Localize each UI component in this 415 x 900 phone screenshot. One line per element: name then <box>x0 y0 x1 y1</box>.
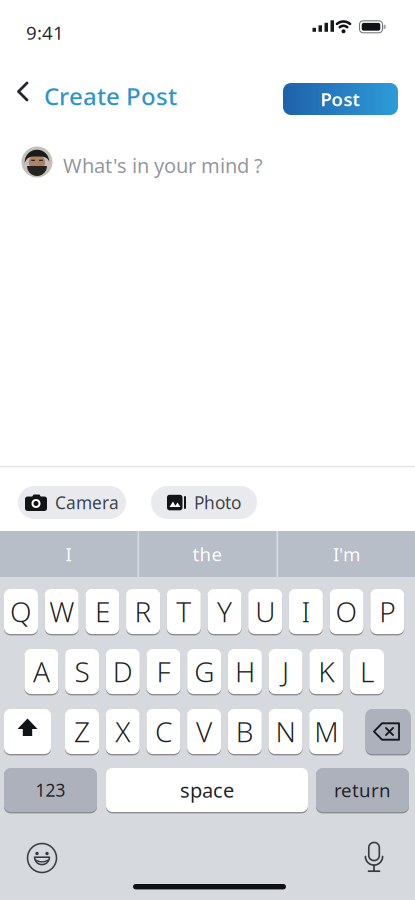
staticText: W <box>49 593 74 630</box>
staticText: Photo <box>194 491 241 514</box>
staticText: O <box>336 593 358 630</box>
staticText: I'm <box>333 542 360 566</box>
staticText: space <box>180 777 234 803</box>
staticText: C <box>155 713 172 750</box>
staticText: H <box>235 653 255 690</box>
staticText: the <box>192 542 222 566</box>
button[interactable]: Photo <box>151 486 257 519</box>
button[interactable]: M <box>309 709 343 754</box>
button[interactable]: F <box>146 649 180 694</box>
button[interactable]: Dictation <box>352 836 396 880</box>
button[interactable]: G <box>187 649 221 694</box>
staticText: Camera <box>55 491 119 514</box>
button[interactable]: Z <box>65 709 99 754</box>
button[interactable]: J <box>269 649 303 694</box>
button[interactable]: X <box>106 709 140 754</box>
staticText: Y <box>217 593 232 630</box>
staticText: K <box>318 653 334 690</box>
staticText: L <box>360 653 374 690</box>
button[interactable]: Camera <box>18 486 126 519</box>
staticText: M <box>314 713 338 750</box>
button[interactable]: S <box>65 649 99 694</box>
button[interactable]: I <box>289 589 323 634</box>
staticText: I <box>301 593 310 630</box>
button[interactable]: Y <box>207 589 241 634</box>
button[interactable]: E <box>85 589 119 634</box>
button[interactable]: W <box>45 589 79 634</box>
staticText: N <box>275 713 295 750</box>
button[interactable]: D <box>106 649 140 694</box>
button[interactable]: 123 <box>4 768 97 812</box>
button[interactable]: return <box>316 768 409 812</box>
staticText: A <box>33 653 50 690</box>
staticText: R <box>135 593 152 630</box>
staticText: X <box>115 713 130 750</box>
button[interactable]: O <box>330 589 364 634</box>
staticText: F <box>156 653 170 690</box>
button[interactable]: V <box>187 709 221 754</box>
staticText: T <box>176 593 191 630</box>
staticText: return <box>334 778 391 802</box>
staticText: D <box>113 653 133 690</box>
staticText: S <box>75 653 90 690</box>
staticText: V <box>196 713 212 750</box>
staticText: 9:41 <box>26 20 64 45</box>
button[interactable]: C <box>146 709 180 754</box>
staticText: What's in your mind ? <box>63 152 263 179</box>
staticText: P <box>379 593 395 630</box>
button[interactable]: I'm <box>278 531 415 577</box>
button[interactable]: N <box>268 709 302 754</box>
button[interactable]: A <box>24 649 58 694</box>
staticText: G <box>194 653 214 690</box>
staticText: Post <box>320 87 360 111</box>
button[interactable]: U <box>248 589 282 634</box>
button[interactable]: R <box>126 589 160 634</box>
staticText: B <box>236 713 254 750</box>
button[interactable]: Emoji <box>20 836 64 880</box>
staticText: Q <box>10 593 32 630</box>
button[interactable]: L <box>350 649 384 694</box>
button[interactable]: Shift <box>4 709 51 754</box>
button[interactable]: T <box>167 589 201 634</box>
button[interactable]: Back <box>12 79 46 104</box>
button[interactable]: I <box>0 531 137 577</box>
button[interactable]: Post <box>283 83 398 115</box>
staticText: J <box>282 653 289 690</box>
button[interactable]: P <box>370 589 404 634</box>
button[interactable]: Delete <box>365 709 410 754</box>
staticText: I <box>65 542 71 566</box>
button[interactable]: Q <box>4 589 38 634</box>
button[interactable]: K <box>309 649 343 694</box>
staticText: Z <box>74 713 90 750</box>
staticText: Create Post <box>44 80 177 112</box>
button[interactable]: B <box>228 709 262 754</box>
staticText: 123 <box>35 778 65 801</box>
staticText: U <box>255 593 275 630</box>
button[interactable]: Post text field <box>63 152 263 179</box>
button[interactable]: space <box>106 768 308 812</box>
button[interactable]: the <box>139 531 276 577</box>
staticText: E <box>95 593 110 630</box>
button[interactable]: H <box>228 649 262 694</box>
